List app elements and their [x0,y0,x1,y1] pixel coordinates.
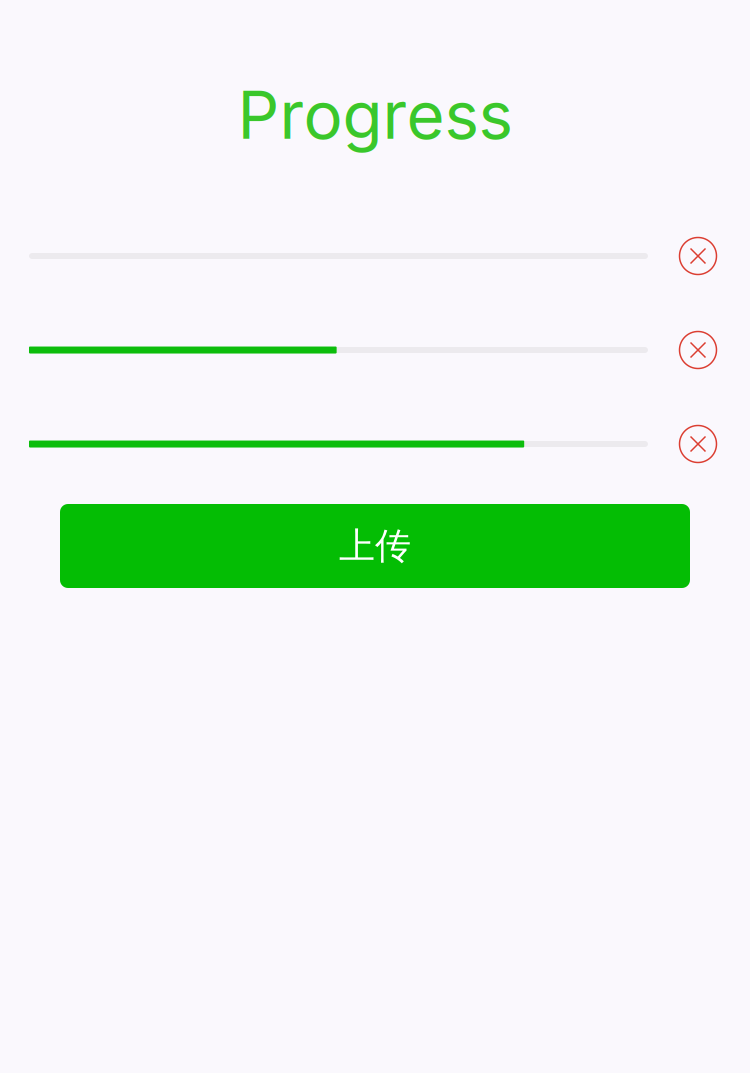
button[interactable]: Cancel upload [679,237,716,274]
staticText: 上传 [339,524,411,568]
button[interactable]: Cancel upload [679,425,716,462]
button[interactable]: Cancel upload [679,331,716,368]
staticText: Progress [237,75,512,154]
button[interactable]: 上传 [60,504,690,588]
